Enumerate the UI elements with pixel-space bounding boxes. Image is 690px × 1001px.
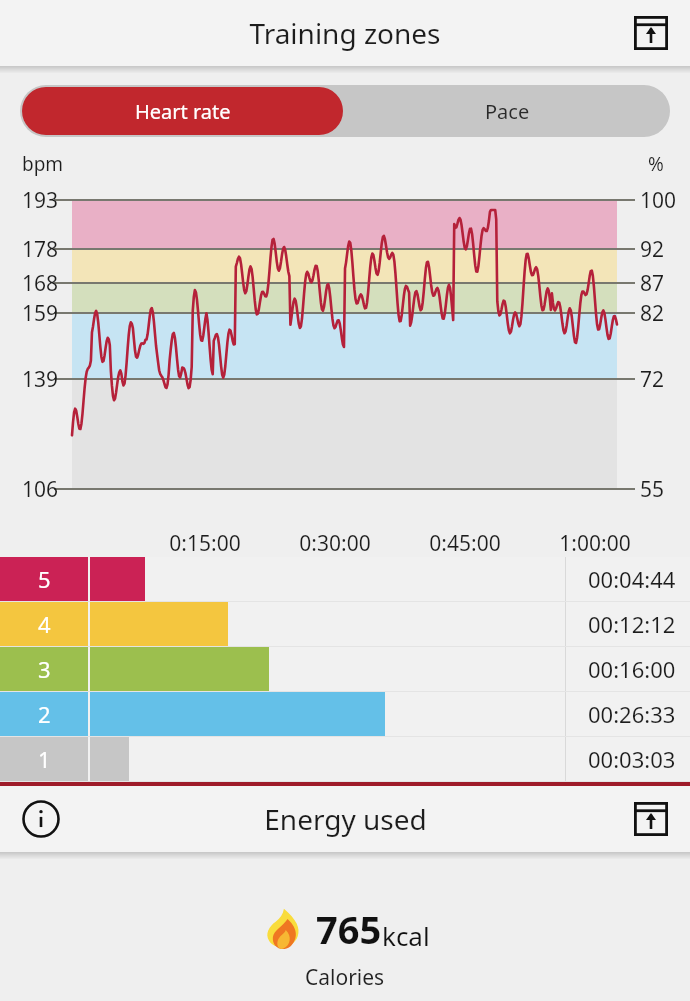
staticText: bpm	[22, 151, 64, 177]
staticText: 193	[22, 186, 59, 215]
button[interactable]: Heart rate	[22, 87, 343, 135]
staticText: Heart rate	[135, 98, 231, 125]
staticText: Calories	[305, 963, 385, 992]
staticText: 178	[22, 235, 59, 264]
staticText: 3	[38, 654, 51, 684]
staticText: 1:00:00	[535, 529, 655, 558]
button[interactable]: Pace	[345, 85, 670, 137]
staticText: 00:03:03	[588, 744, 676, 774]
button[interactable]: 5	[0, 557, 690, 601]
staticText: 0:15:00	[145, 529, 265, 558]
staticText: 00:04:44	[588, 564, 676, 594]
staticText: 55	[640, 475, 665, 504]
staticText: 92	[640, 235, 665, 264]
staticText: 106	[22, 475, 59, 504]
staticText: 5	[38, 564, 51, 594]
staticText: 00:26:33	[588, 699, 676, 729]
staticText: 1	[38, 744, 51, 774]
button[interactable]: 3	[0, 647, 690, 691]
staticText: 72	[640, 365, 665, 394]
staticText: 100	[640, 186, 677, 215]
button[interactable]: Expand section	[628, 10, 674, 56]
staticText: Training zones	[249, 14, 441, 52]
staticText: Pace	[485, 98, 530, 125]
button[interactable]: Information	[18, 796, 64, 842]
button[interactable]: 1	[0, 737, 690, 781]
staticText: 159	[22, 299, 59, 328]
button[interactable]: 4	[0, 602, 690, 646]
button[interactable]: 2	[0, 692, 690, 736]
button[interactable]: Expand section	[628, 796, 674, 842]
staticText: 168	[22, 269, 59, 298]
staticText: 765	[316, 903, 382, 955]
staticText: 4	[38, 609, 51, 639]
staticText: 87	[640, 269, 665, 298]
staticText: 2	[38, 699, 51, 729]
staticText: 0:45:00	[405, 529, 525, 558]
staticText: 82	[640, 299, 665, 328]
staticText: %	[648, 151, 664, 177]
staticText: kcal	[382, 918, 430, 953]
staticText: 00:16:00	[588, 654, 676, 684]
staticText: 0:30:00	[275, 529, 395, 558]
staticText: 00:12:12	[588, 609, 676, 639]
staticText: 139	[22, 365, 59, 394]
staticText: Energy used	[264, 800, 427, 838]
